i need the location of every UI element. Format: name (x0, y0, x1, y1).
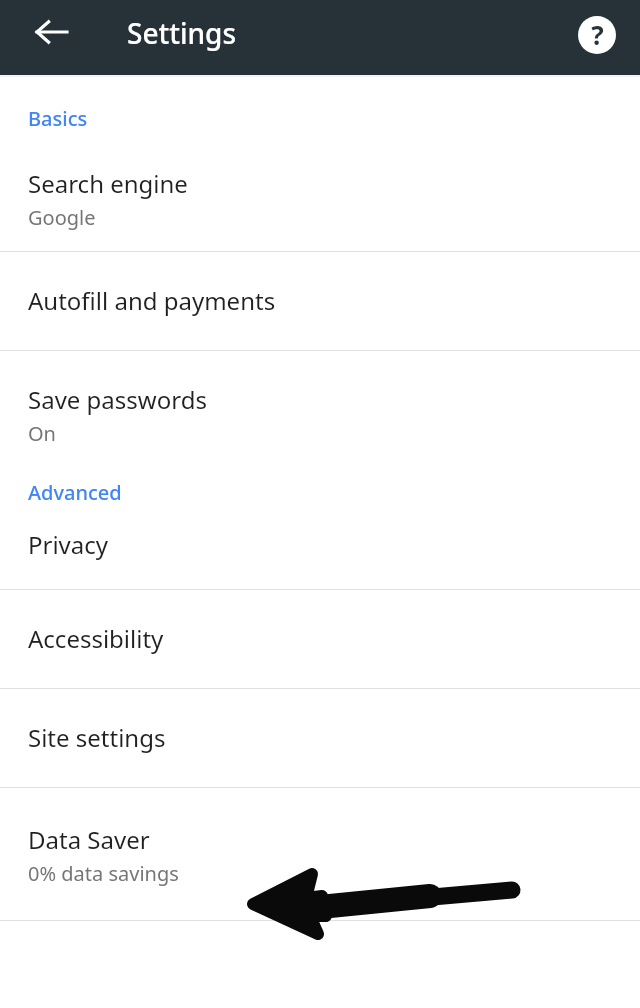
button[interactable]: Save passwords (0, 351, 640, 467)
button[interactable]: Data Saver (0, 788, 640, 920)
staticText: Save passwords (28, 383, 207, 416)
button[interactable]: Privacy (0, 506, 640, 589)
button[interactable]: Back (22, 2, 82, 62)
staticText: Site settings (28, 721, 166, 754)
staticText: Advanced (28, 479, 122, 506)
button[interactable]: Help (566, 4, 628, 66)
staticText: Data Saver (28, 823, 150, 856)
staticText: Accessibility (28, 622, 164, 655)
staticText: On (28, 420, 56, 447)
button[interactable]: Search engine (0, 132, 640, 251)
button[interactable]: Site settings (0, 689, 640, 787)
staticText: Google (28, 204, 96, 231)
staticText: 0% data savings (28, 860, 179, 887)
staticText: Search engine (28, 167, 188, 200)
staticText: ? (591, 17, 604, 52)
button[interactable]: Accessibility (0, 590, 640, 688)
button[interactable]: Autofill and payments (0, 252, 640, 350)
staticText: Settings (127, 14, 237, 52)
staticText: Autofill and payments (28, 284, 276, 317)
staticText: Basics (28, 105, 88, 132)
staticText: Privacy (28, 528, 109, 561)
